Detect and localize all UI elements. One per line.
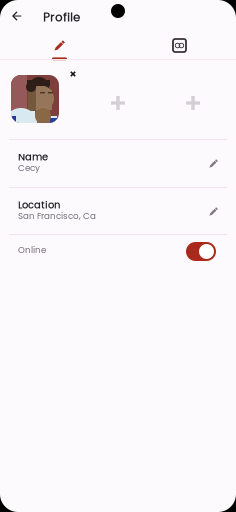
- staticText: Online: [18, 244, 46, 256]
- button[interactable]: Location: [0, 188, 236, 235]
- staticText: Name: [18, 150, 48, 164]
- button[interactable]: Back: [4, 3, 30, 29]
- staticText: Profile: [43, 9, 80, 26]
- staticText: San Francisco, Ca: [18, 210, 96, 222]
- button[interactable]: Photos: [118, 32, 236, 60]
- button[interactable]: Add photo: [103, 88, 133, 118]
- staticText: Cecy: [18, 162, 40, 174]
- button[interactable]: Edit profile: [0, 32, 118, 60]
- button[interactable]: Add photo: [178, 88, 208, 118]
- button[interactable]: Name: [0, 140, 236, 187]
- staticText: Location: [18, 198, 60, 212]
- button[interactable]: Remove photo: [67, 68, 79, 80]
- button[interactable]: Profile photo: [11, 75, 59, 123]
- button[interactable]: Online: [0, 235, 236, 269]
